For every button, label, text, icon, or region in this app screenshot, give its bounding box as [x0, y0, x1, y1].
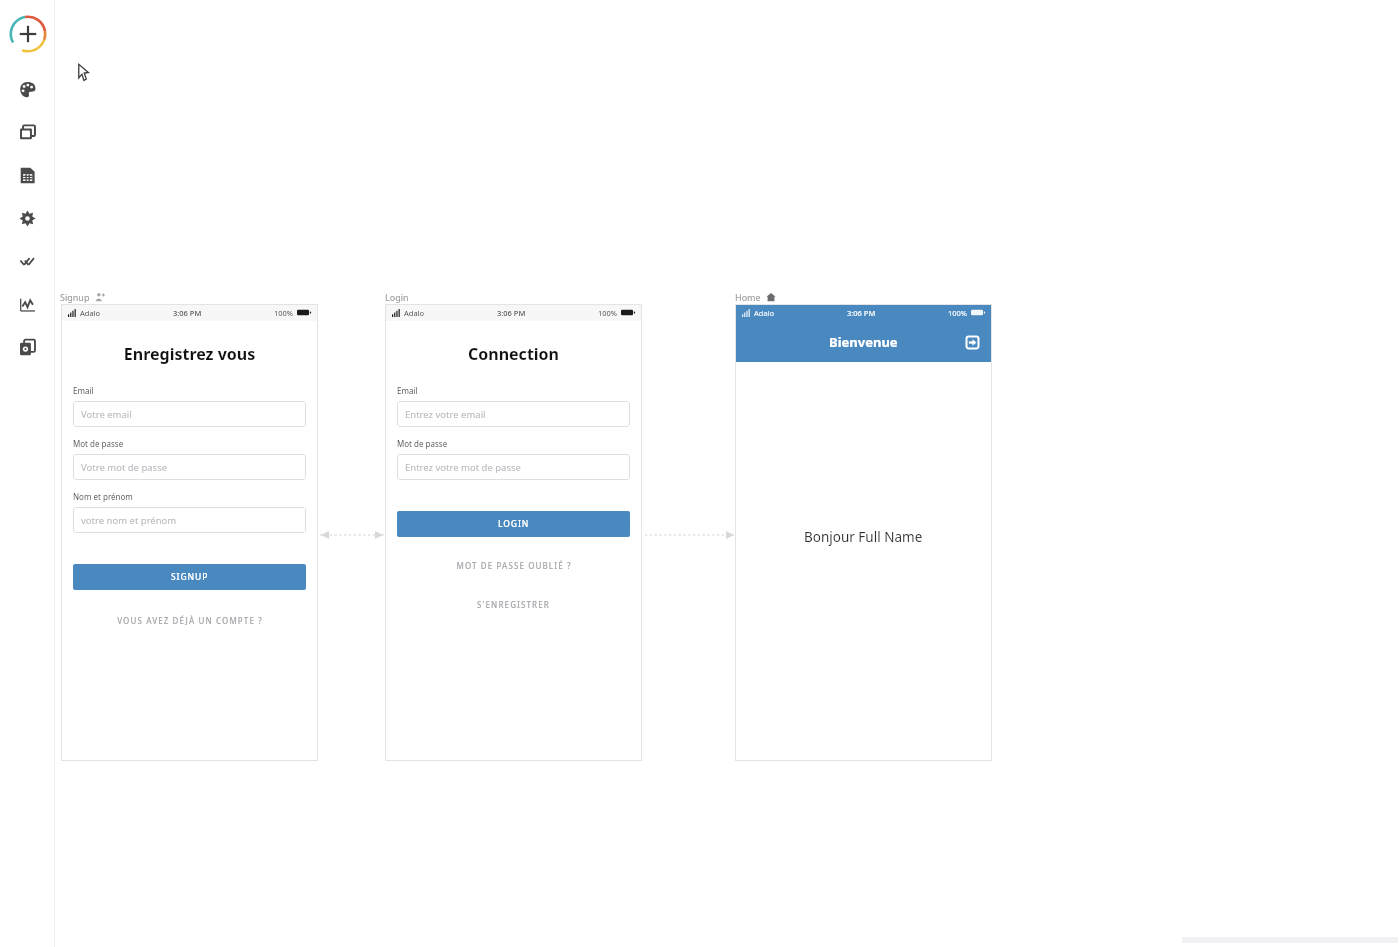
button[interactable]: votre nom et prénom — [73, 507, 306, 533]
button[interactable]: Analytics — [0, 283, 55, 326]
button[interactable]: SIGNUP — [73, 564, 306, 590]
staticText: 100% — [948, 308, 968, 318]
staticText: Signup — [60, 291, 90, 303]
button[interactable]: S'ENREGISTRER — [397, 593, 630, 615]
staticText: Adalo — [754, 308, 775, 318]
button[interactable]: Votre email — [73, 401, 306, 427]
staticText: Mot de passe — [73, 438, 124, 449]
staticText: Email — [73, 385, 94, 396]
staticText: Entrez votre mot de passe — [405, 461, 521, 474]
staticText: 100% — [274, 308, 294, 318]
staticText: Login — [385, 291, 409, 303]
staticText: Votre email — [81, 408, 132, 421]
button[interactable]: Design — [0, 68, 55, 111]
button[interactable]: Signup — [60, 289, 105, 304]
button[interactable]: VOUS AVEZ DÉJÀ UN COMPTE ? — [73, 609, 306, 631]
button[interactable]: Database — [0, 154, 55, 197]
staticText: Email — [397, 385, 418, 396]
staticText: Connection — [385, 343, 642, 365]
staticText: Mot de passe — [397, 438, 448, 449]
staticText: Enregistrez vous — [61, 343, 318, 365]
button[interactable]: LOGIN — [397, 511, 630, 537]
staticText: Nom et prénom — [73, 491, 133, 502]
button[interactable]: Logout — [961, 331, 983, 353]
staticText: LOGIN — [498, 518, 530, 530]
staticText: VOUS AVEZ DÉJÀ UN COMPTE ? — [117, 615, 263, 626]
button[interactable]: MOT DE PASSE OUBLIÉ ? — [397, 554, 630, 576]
button[interactable]: Entrez votre mot de passe — [397, 454, 630, 480]
staticText: Entrez votre email — [405, 408, 486, 421]
staticText: MOT DE PASSE OUBLIÉ ? — [456, 560, 572, 571]
button[interactable]: Entrez votre email — [397, 401, 630, 427]
staticText: Bienvenue — [829, 333, 898, 351]
staticText: 100% — [598, 308, 618, 318]
button[interactable]: Add — [9, 15, 47, 53]
button[interactable]: Publish — [0, 326, 55, 369]
staticText: Adalo — [404, 308, 425, 318]
staticText: 3:06 PM — [173, 308, 202, 318]
staticText: votre nom et prénom — [81, 514, 177, 527]
button[interactable]: Votre mot de passe — [73, 454, 306, 480]
button[interactable]: Login — [385, 289, 409, 304]
staticText: Home — [735, 291, 761, 303]
button[interactable]: Screens — [0, 111, 55, 154]
button[interactable]: Home — [735, 289, 776, 304]
staticText: Adalo — [80, 308, 101, 318]
staticText: 3:06 PM — [497, 308, 526, 318]
staticText: 3:06 PM — [847, 308, 876, 318]
staticText: SIGNUP — [171, 571, 209, 583]
button[interactable]: Settings — [0, 197, 55, 240]
button[interactable]: Checklist — [0, 240, 55, 283]
staticText: Votre mot de passe — [81, 461, 168, 474]
staticText: Bonjour Full Name — [804, 528, 923, 546]
staticText: S'ENREGISTRER — [477, 599, 550, 610]
